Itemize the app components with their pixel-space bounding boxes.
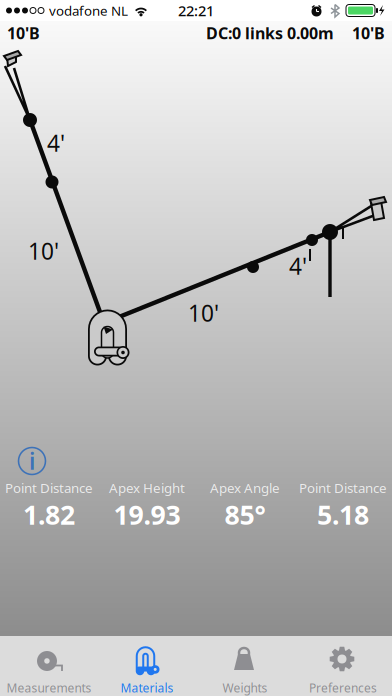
staticText: 22:21	[178, 1, 214, 20]
button[interactable]: Preferences	[294, 636, 392, 696]
staticText: Materials	[120, 680, 173, 696]
button[interactable]: Materials	[98, 636, 196, 696]
staticText: Apex Height	[109, 479, 185, 497]
staticText: Apex Angle	[210, 479, 280, 497]
button[interactable]: Weights	[196, 636, 294, 696]
staticText: 10'B	[7, 22, 40, 44]
staticText: i	[29, 446, 35, 476]
staticText: 10'	[188, 298, 219, 328]
staticText: 10'	[28, 236, 59, 266]
staticText: 4'	[289, 251, 307, 281]
staticText: 4'	[47, 128, 65, 158]
staticText: 85°	[224, 497, 265, 532]
staticText: Weights	[222, 680, 267, 696]
button[interactable]: Info	[14, 443, 50, 479]
staticText: Preferences	[309, 680, 377, 696]
staticText: vodafone NL	[49, 2, 128, 19]
staticText: 1.82	[23, 497, 75, 532]
staticText: Point Distance	[299, 479, 387, 497]
staticText: 10'B	[352, 22, 385, 44]
staticText: 5.18	[317, 497, 369, 532]
staticText: Measurements	[6, 680, 91, 696]
staticText: Point Distance	[5, 479, 93, 497]
staticText: 19.93	[113, 497, 180, 532]
button[interactable]: Measurements	[0, 636, 98, 696]
staticText: DC:0 links 0.00m	[206, 22, 334, 44]
